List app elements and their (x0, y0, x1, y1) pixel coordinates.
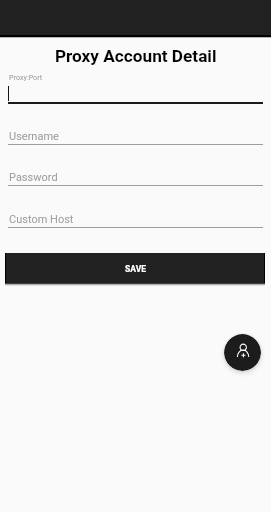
button[interactable]: Add account (224, 334, 261, 371)
staticText: Password (9, 171, 58, 184)
staticText: Proxy Account Detail (55, 46, 217, 66)
staticText: SAVE (125, 264, 146, 274)
button[interactable]: Username (0, 124, 271, 146)
button[interactable]: SAVE (6, 253, 264, 283)
staticText: Proxy:Port (9, 73, 43, 81)
button[interactable]: Password (0, 165, 271, 187)
staticText: Username (9, 130, 59, 143)
staticText: Custom Host (9, 213, 74, 226)
button[interactable]: Custom Host (0, 207, 271, 229)
